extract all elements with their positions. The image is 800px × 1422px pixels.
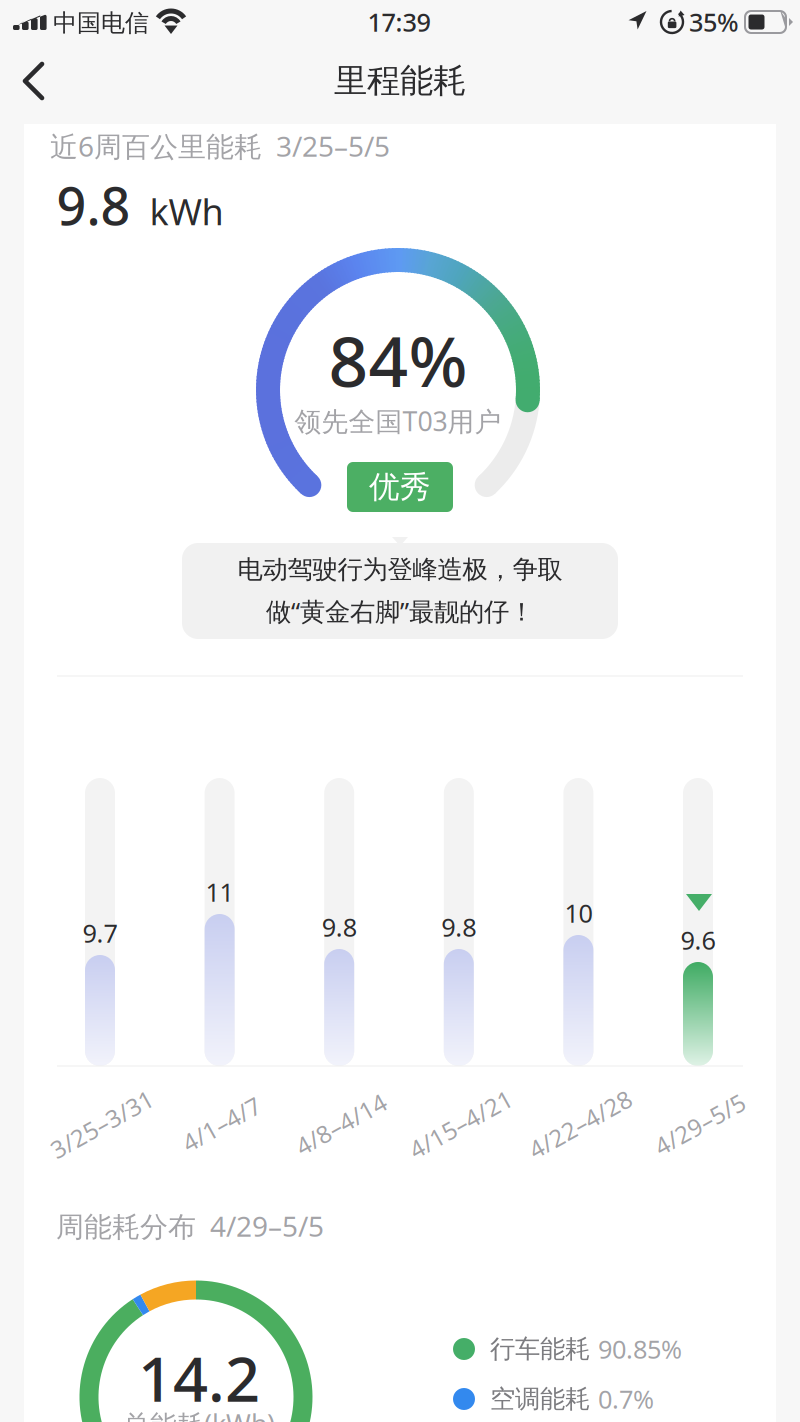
button[interactable]: 优秀 (347, 462, 453, 512)
staticText: 90.85% (598, 1332, 682, 1366)
staticText: 中国电信 (53, 8, 149, 38)
staticText: 17:39 (367, 5, 430, 39)
staticText: 行车能耗 (490, 1333, 590, 1364)
staticText: 4/29–5/5 (650, 1108, 750, 1140)
staticText: 里程能耗 (334, 60, 466, 101)
staticText: 周能耗分布 4/29–5/5 (56, 1207, 324, 1245)
staticText: 35% (689, 5, 739, 39)
staticText: 电动驾驶行为登峰造极，争取 (237, 554, 562, 585)
staticText: 优秀 (369, 468, 431, 506)
staticText: 总能耗(kWh) (123, 1406, 275, 1422)
staticText: 做“黄金右脚”最靓的仔！ (266, 594, 534, 628)
staticText: 3/25–3/31 (45, 1108, 159, 1140)
staticText: 11 (206, 875, 234, 909)
staticText: 4/8–4/14 (291, 1108, 391, 1140)
staticText: 0.7% (598, 1382, 654, 1416)
staticText: 84% (328, 314, 467, 406)
staticText: 空调能耗 (490, 1383, 590, 1414)
button[interactable]: Back (11, 48, 77, 114)
staticText: 领先全国T03用户 (294, 403, 501, 439)
staticText: 9.8 (322, 910, 357, 944)
staticText: 9.6 (680, 923, 715, 957)
staticText: 14.2 (138, 1337, 260, 1419)
staticText: 9.8 (441, 910, 476, 944)
staticText: 10 (564, 896, 592, 930)
staticText: 4/22–4/28 (523, 1108, 637, 1140)
staticText: 9.8 (56, 170, 130, 240)
staticText: 9.7 (82, 916, 117, 950)
staticText: 4/1–4/7 (179, 1108, 265, 1140)
staticText: 近6周百公里能耗 3/25–5/5 (50, 127, 390, 165)
staticText: kWh (149, 187, 223, 235)
staticText: 4/15–4/21 (404, 1108, 518, 1140)
